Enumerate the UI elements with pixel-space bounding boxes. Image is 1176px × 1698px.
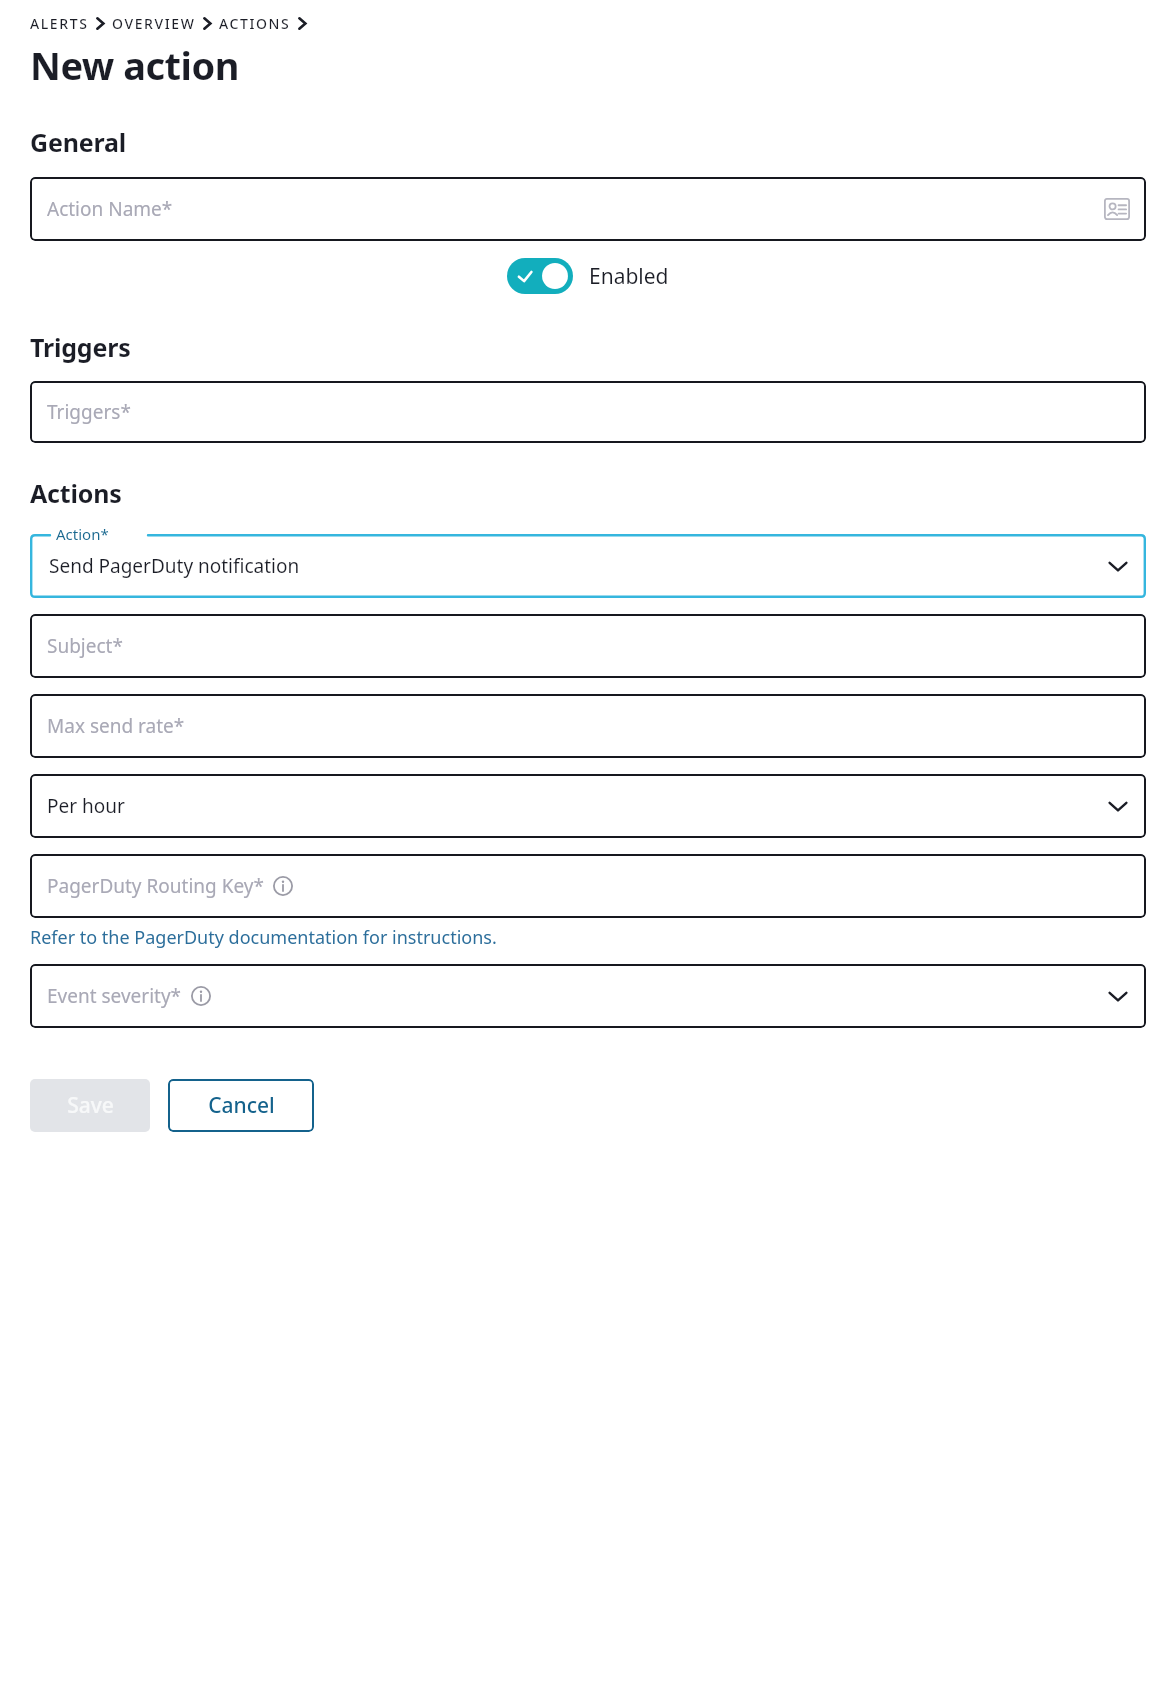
button[interactable]: Send PagerDuty notification <box>30 534 1146 598</box>
staticText: Send PagerDuty notification <box>49 553 300 579</box>
staticText: New action <box>30 39 239 91</box>
staticText: Actions <box>30 476 122 510</box>
staticText: ALERTS <box>30 14 89 33</box>
button[interactable]: Subject* <box>30 614 1146 678</box>
button[interactable]: Cancel <box>168 1079 314 1132</box>
button[interactable]: Save <box>30 1079 150 1132</box>
staticText: Max send rate* <box>47 713 185 739</box>
staticText: Action Name* <box>47 196 173 222</box>
staticText: Subject* <box>47 633 123 659</box>
button[interactable]: Per hour <box>30 774 1146 838</box>
button[interactable]: PagerDuty Routing Key* <box>30 854 1146 918</box>
staticText: Per hour <box>47 793 125 819</box>
button[interactable]: Event severity* <box>30 964 1146 1028</box>
staticText: Enabled <box>589 262 669 291</box>
staticText: Triggers* <box>47 399 131 425</box>
staticText: Triggers <box>30 330 131 364</box>
staticText: PagerDuty Routing Key* <box>47 873 264 899</box>
staticText: OVERVIEW <box>112 14 196 33</box>
button[interactable]: Choose contact <box>1104 198 1130 220</box>
button[interactable]: Refer to the PagerDuty documentation for… <box>30 925 497 950</box>
staticText: Save <box>67 1091 114 1120</box>
staticText: Cancel <box>208 1091 275 1120</box>
staticText: Action* <box>56 524 109 544</box>
button[interactable]: Enabled <box>507 258 669 294</box>
staticText: ACTIONS <box>219 14 291 33</box>
button[interactable]: Triggers* <box>30 381 1146 443</box>
button[interactable]: Action Name* <box>30 177 1146 241</box>
staticText: Refer to the PagerDuty documentation for… <box>30 925 497 950</box>
staticText: Event severity* <box>47 983 182 1009</box>
staticText: General <box>30 125 126 159</box>
button[interactable]: Max send rate* <box>30 694 1146 758</box>
